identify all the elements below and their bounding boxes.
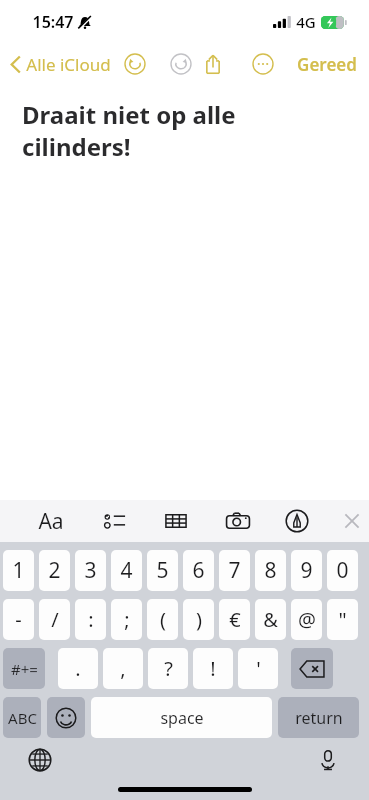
button[interactable]: 3 [75,550,106,591]
button[interactable]: . [58,648,98,689]
staticText: 4G [296,12,316,32]
staticText: & [263,606,278,633]
button[interactable]: € [219,599,250,640]
button[interactable]: 1 [3,550,34,591]
staticText: 0 [336,556,349,585]
button[interactable]: Change keyboard language [28,748,52,772]
button[interactable]: ' [238,648,278,689]
button[interactable]: ! [193,648,233,689]
staticText: € [229,606,241,633]
button[interactable]: ? [148,648,188,689]
staticText: #+= [11,659,38,679]
staticText: - [15,606,22,633]
staticText: 1 [12,556,25,585]
button[interactable]: 2 [39,550,70,591]
staticText: ? [164,655,173,682]
button[interactable]: Backspace [291,648,333,689]
staticText: 8 [264,556,277,585]
staticText: . [75,655,81,682]
button[interactable]: / [39,599,70,640]
button[interactable]: Markup [283,507,311,535]
staticText: ) [196,606,202,633]
button[interactable]: ; [111,599,142,640]
staticText: 2 [48,556,61,585]
staticText: 5 [156,556,169,585]
button[interactable]: Close keyboard [339,508,365,534]
staticText: @ [298,606,316,633]
button[interactable]: Table [162,507,190,535]
button[interactable]: ) [183,599,214,640]
button[interactable]: return [278,697,359,738]
staticText: : [88,606,94,633]
staticText: ' [256,655,261,682]
button[interactable]: Camera [223,506,253,536]
staticText: ! [210,655,216,682]
button[interactable]: Emoji [47,697,85,738]
button[interactable]: 6 [183,550,214,591]
staticText: 9 [300,556,313,585]
button[interactable]: #+= [3,648,45,689]
staticText: 4 [120,556,133,585]
button[interactable]: 7 [219,550,250,591]
button[interactable]: 5 [147,550,178,591]
staticText: space [160,707,204,729]
button[interactable]: More options [249,50,277,78]
staticText: 7 [228,556,241,585]
button[interactable]: Gereed [295,49,359,80]
button[interactable]: & [255,599,286,640]
button[interactable]: 9 [291,550,322,591]
button[interactable]: Redo [167,50,195,78]
button[interactable]: Checklist [101,507,129,535]
button[interactable]: Alle iCloud [8,49,113,80]
staticText: 3 [84,556,97,585]
button[interactable]: @ [291,599,322,640]
staticText: " [338,606,347,633]
staticText: Draait niet op alle cilinders! [22,98,347,163]
button[interactable]: ( [147,599,178,640]
staticText: Gereed [297,53,357,76]
staticText: 6 [192,556,205,585]
staticText: ; [124,606,130,633]
staticText: Alle iCloud [26,53,111,76]
button[interactable]: Undo [121,50,149,78]
staticText: return [295,707,343,729]
staticText: ABC [8,708,37,728]
button[interactable]: : [75,599,106,640]
button[interactable]: 0 [327,550,358,591]
staticText: ( [160,606,166,633]
staticText: , [120,655,126,682]
button[interactable]: 4 [111,550,142,591]
button[interactable]: - [3,599,34,640]
button[interactable]: " [327,599,358,640]
button[interactable]: Dictate [317,749,339,771]
button[interactable]: Aa [34,503,68,540]
button[interactable]: , [103,648,143,689]
button[interactable]: ABC [3,697,41,738]
staticText: Aa [38,507,64,536]
button[interactable]: Share [199,50,227,78]
button[interactable]: space [91,697,272,738]
staticText: 15:47 [32,11,74,33]
button[interactable]: 8 [255,550,286,591]
staticText: / [51,606,59,633]
